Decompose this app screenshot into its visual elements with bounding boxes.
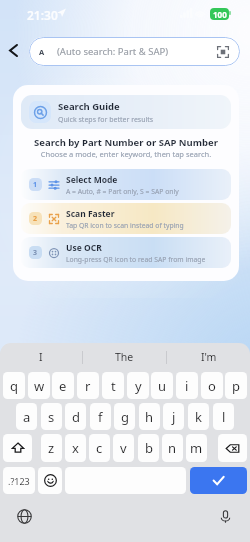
button[interactable]: Search Guide (21, 95, 231, 129)
staticText: t (111, 377, 116, 395)
staticText: s (48, 408, 55, 426)
button[interactable]: The (83, 350, 166, 364)
button[interactable]: x (65, 434, 86, 462)
button[interactable]: Enter (190, 467, 247, 494)
button[interactable]: 1 (21, 169, 231, 200)
staticText: .?123 (8, 475, 30, 487)
other: Backspace (225, 441, 240, 456)
staticText: A (39, 47, 45, 57)
button[interactable]: n (162, 434, 183, 462)
staticText: 21:30 (27, 7, 58, 23)
staticText: b (145, 439, 153, 457)
button[interactable]: d (65, 403, 86, 430)
staticText: o (208, 377, 216, 395)
button[interactable]: Backspace (218, 434, 247, 462)
button[interactable]: l (213, 403, 234, 430)
staticText: 100 (213, 9, 227, 20)
button[interactable]: Emoji (38, 467, 62, 494)
staticText: h (145, 408, 154, 426)
staticText: 1 (33, 180, 38, 190)
button[interactable]: h (139, 403, 160, 430)
staticText: I (39, 350, 43, 364)
button[interactable]: a (16, 403, 37, 430)
staticText: Tap QR icon to scan instead of typing (66, 221, 184, 230)
staticText: f (98, 408, 103, 426)
staticText: i (185, 377, 189, 395)
button[interactable]: u (151, 372, 173, 399)
staticText: w (34, 377, 45, 395)
staticText: (Auto search: Part & SAP) (57, 45, 169, 58)
button[interactable]: I (0, 350, 82, 364)
staticText: m (190, 439, 203, 457)
button[interactable]: Change keyboard (14, 506, 35, 527)
staticText: l (222, 408, 226, 426)
staticText: r (85, 377, 91, 395)
button[interactable]: s (41, 403, 62, 430)
staticText: 2 (33, 214, 38, 224)
staticText: g (121, 408, 129, 426)
staticText: A = Auto, # = Part only, S = SAP only (66, 187, 179, 196)
button[interactable]: p (225, 372, 247, 399)
button[interactable]: m (186, 434, 207, 462)
button[interactable]: o (201, 372, 223, 399)
staticText: c (96, 439, 103, 457)
staticText: q (10, 377, 18, 395)
staticText: x (72, 439, 79, 457)
staticText: Long-press QR icon to read SAP from imag… (66, 255, 206, 264)
button[interactable]: e (52, 372, 74, 399)
button[interactable]: i (176, 372, 198, 399)
staticText: p (232, 377, 240, 395)
button[interactable]: j (163, 403, 184, 430)
button[interactable]: g (114, 403, 135, 430)
staticText: y (135, 377, 142, 395)
button[interactable]: w (28, 372, 50, 399)
button[interactable]: r (77, 372, 99, 399)
button[interactable]: A (29, 37, 240, 66)
staticText: I'm (201, 350, 217, 364)
staticText: Search Guide (58, 100, 120, 113)
staticText: Search by Part Number or SAP Number (13, 136, 239, 149)
button[interactable]: Scan barcode (215, 44, 231, 60)
staticText: z (48, 439, 55, 457)
button[interactable]: Shift (3, 434, 32, 462)
staticText: 3 (33, 248, 38, 258)
staticText: Select Mode (66, 174, 118, 186)
staticText: v (120, 439, 127, 457)
button[interactable]: z (41, 434, 62, 462)
button[interactable]: b (138, 434, 159, 462)
button[interactable]: t (102, 372, 124, 399)
button[interactable]: .?123 (3, 467, 35, 494)
button[interactable]: q (3, 372, 25, 399)
staticText: n (168, 439, 177, 457)
staticText: e (59, 377, 67, 395)
button[interactable]: k (188, 403, 209, 430)
button[interactable]: 2 (21, 203, 231, 234)
button[interactable]: I'm (167, 350, 250, 364)
button[interactable]: c (89, 434, 110, 462)
button[interactable]: Back (1, 38, 25, 62)
staticText: d (72, 408, 80, 426)
button[interactable]: v (113, 434, 134, 462)
button[interactable]: f (90, 403, 111, 430)
staticText: Choose a mode, enter keyword, then tap s… (13, 149, 239, 159)
staticText: u (158, 377, 167, 395)
button[interactable]: y (127, 372, 149, 399)
staticText: a (23, 408, 31, 426)
other: Shift (11, 441, 25, 455)
staticText: j (172, 408, 176, 426)
button[interactable]: Dictate (215, 506, 236, 527)
staticText: Scan Faster (66, 208, 115, 220)
button[interactable]: 3 (21, 237, 231, 268)
staticText: k (195, 408, 202, 426)
staticText: Quick steps for better results (58, 115, 154, 125)
staticText: Use OCR (66, 242, 102, 254)
staticText: The (115, 350, 134, 364)
